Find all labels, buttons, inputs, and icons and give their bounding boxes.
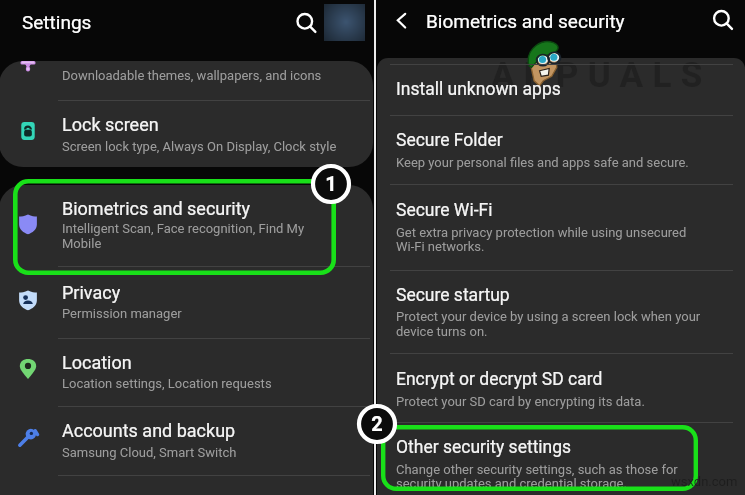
button[interactable]: Search — [707, 5, 735, 33]
staticText: Biometrics and security — [62, 198, 251, 219]
staticText: Other security settings — [396, 437, 572, 458]
staticText: Intelligent Scan, Face recognition, Find… — [62, 221, 305, 236]
staticText: device turns on. — [396, 324, 488, 339]
staticText: 2 — [371, 412, 383, 435]
staticText: wsxdn.com — [671, 474, 738, 489]
staticText: Accounts and backup — [62, 420, 236, 441]
staticText: Change other security settings, such as … — [396, 462, 678, 477]
staticText: Keep your personal files and apps safe a… — [396, 155, 689, 170]
staticText: Get extra privacy protection while using… — [396, 225, 687, 240]
staticText: Downloadable themes, wallpapers, and ico… — [62, 68, 322, 83]
staticText: Protect your device by using a screen lo… — [396, 309, 701, 324]
staticText: Mobile — [62, 236, 102, 251]
staticText: security updates and credential storage. — [396, 476, 627, 491]
button[interactable]: Search — [291, 8, 319, 36]
staticText: Install unknown apps — [396, 79, 561, 100]
staticText: Location — [62, 352, 132, 373]
staticText: Screen lock type, Always On Display, Clo… — [62, 139, 337, 154]
staticText: Permission manager — [62, 306, 182, 321]
staticText: 1 — [325, 172, 337, 195]
staticText: Wi-Fi networks. — [396, 239, 485, 254]
staticText: Encrypt or decrypt SD card — [396, 369, 603, 390]
staticText: Secure startup — [396, 285, 510, 306]
button[interactable]: Other security settings — [381, 425, 698, 491]
staticText: Protect your SD card by encrypting its d… — [396, 394, 645, 409]
button[interactable]: Back — [390, 7, 416, 33]
button[interactable]: Biometrics and security — [13, 179, 336, 275]
staticText: Secure Wi-Fi — [396, 200, 493, 221]
staticText: Secure Folder — [396, 130, 503, 151]
button[interactable]: Profile — [324, 4, 365, 41]
staticText: Samsung Cloud, Smart Switch — [62, 445, 237, 460]
staticText: Biometrics and security — [426, 10, 625, 32]
staticText: Location settings, Location requests — [62, 376, 272, 391]
staticText: Lock screen — [62, 114, 159, 135]
staticText: Privacy — [62, 282, 121, 303]
staticText: Settings — [22, 11, 92, 33]
staticText: APPUALS — [491, 55, 712, 96]
